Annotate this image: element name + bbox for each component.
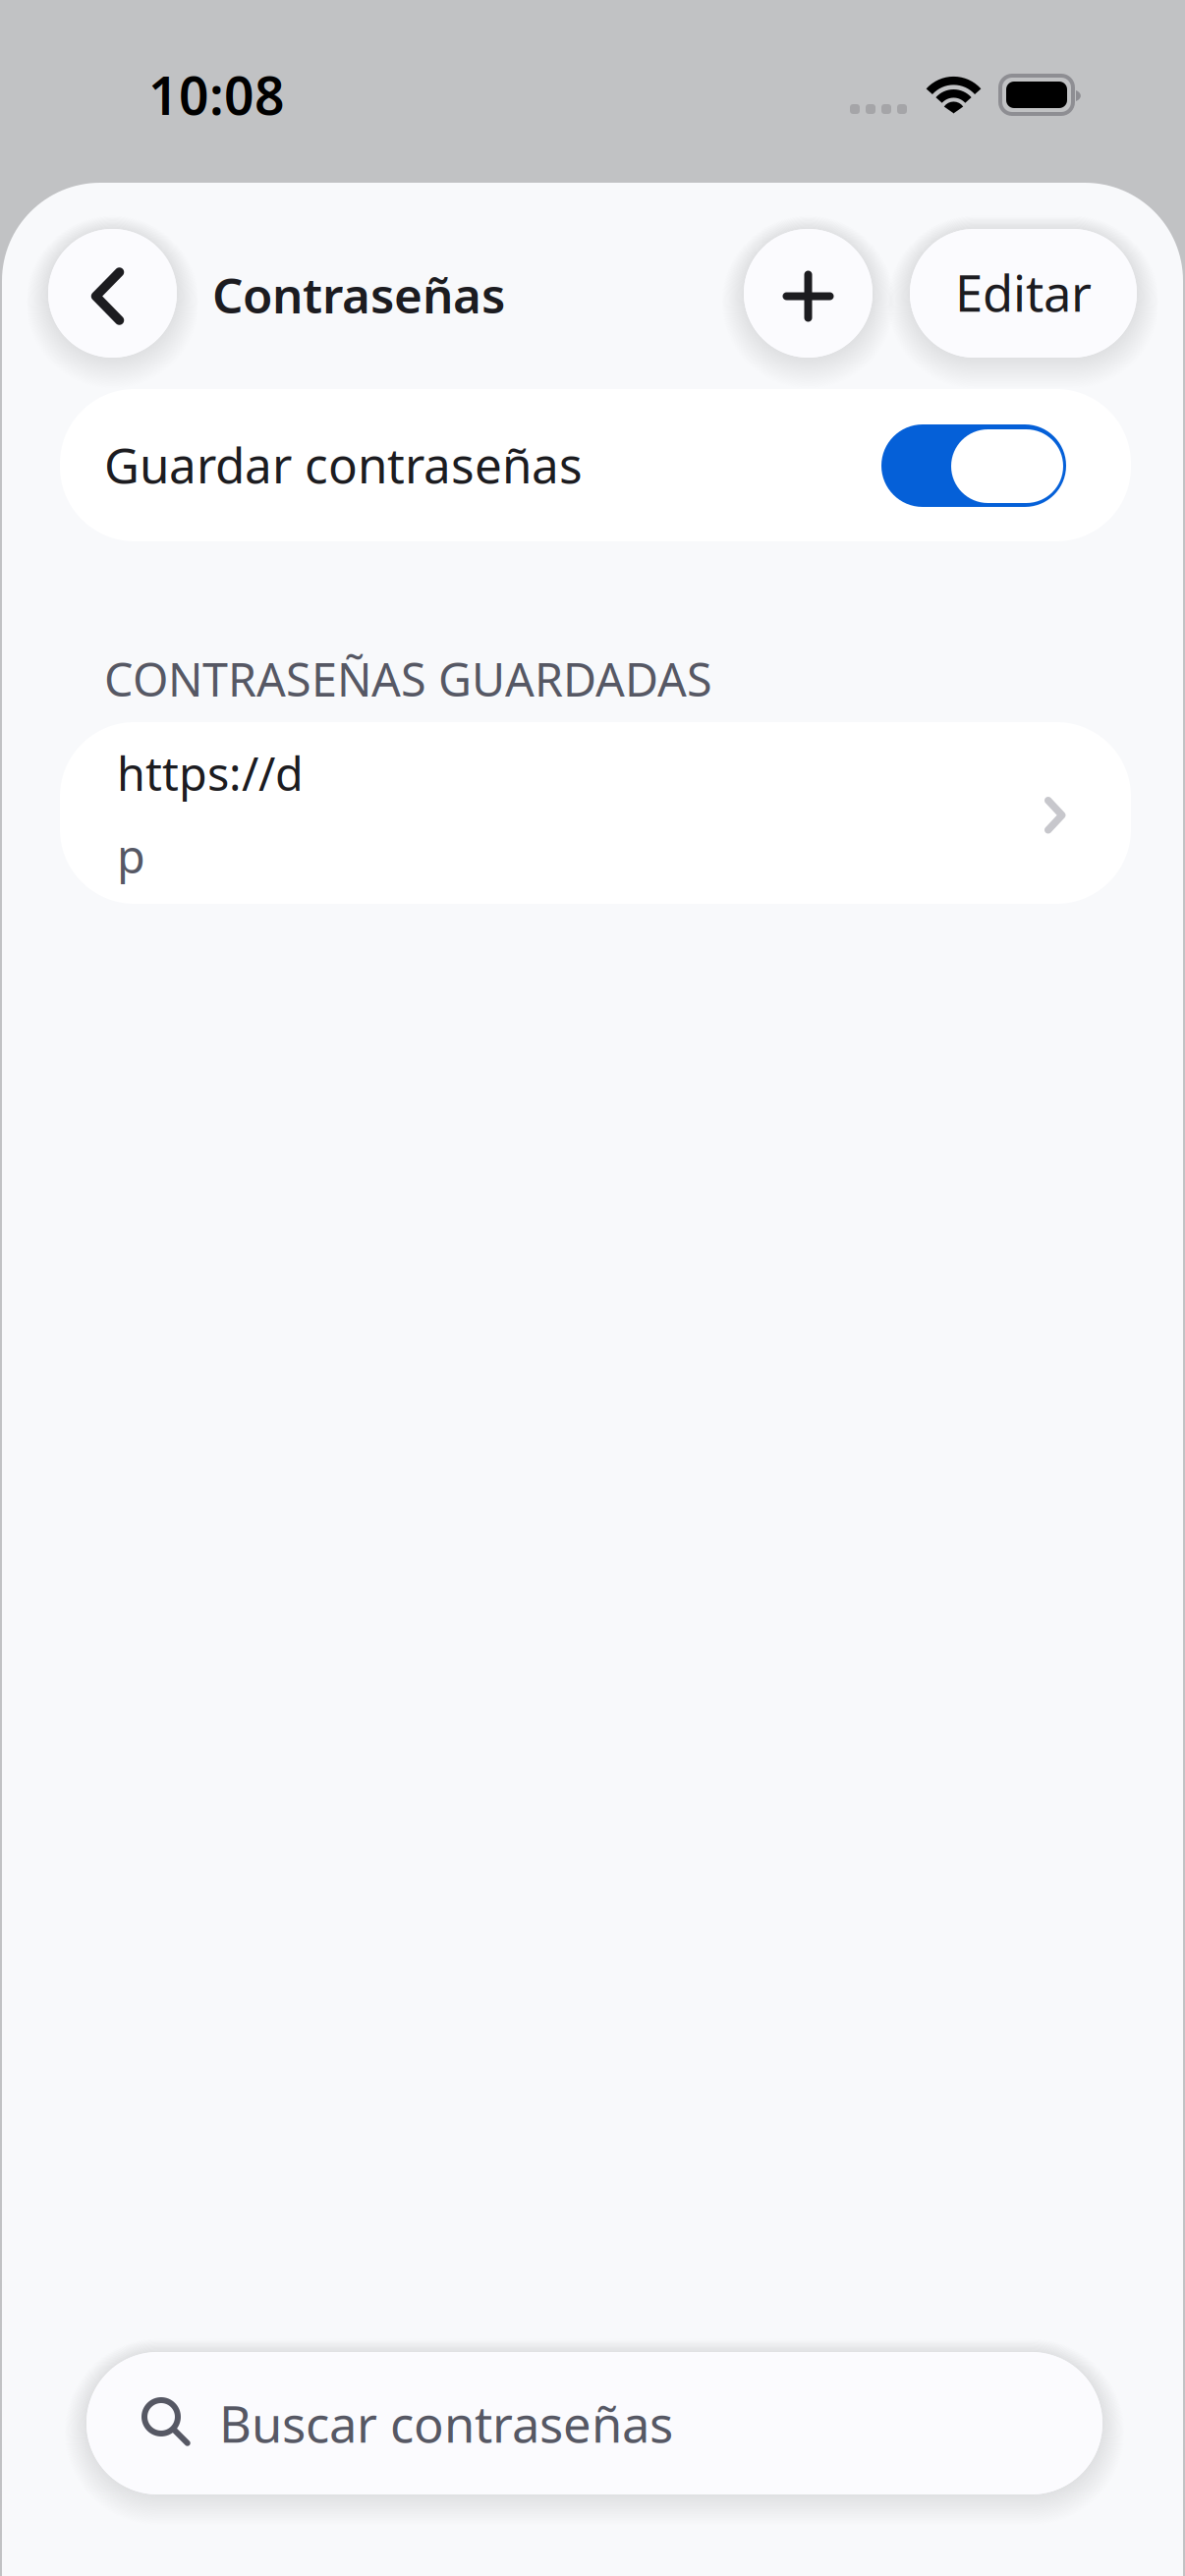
- staticText: https://d: [117, 743, 304, 804]
- staticText: Editar: [955, 259, 1092, 325]
- staticText: Guardar contraseñas: [104, 432, 583, 497]
- button[interactable]: Guardar contraseñas: [60, 389, 1131, 541]
- button[interactable]: https://d: [60, 722, 1131, 904]
- staticText: p: [117, 825, 145, 886]
- staticText: CONTRASEÑAS GUARDADAS: [104, 648, 712, 709]
- staticText: Contraseñas: [212, 262, 505, 327]
- button[interactable]: Editar: [910, 229, 1137, 358]
- staticText: 10:08: [148, 60, 285, 129]
- button[interactable]: Atrás: [48, 229, 177, 358]
- button[interactable]: Buscar contraseñas: [86, 2352, 1102, 2494]
- staticText: Buscar contraseñas: [219, 2390, 673, 2456]
- button[interactable]: Añadir contraseña: [744, 229, 873, 358]
